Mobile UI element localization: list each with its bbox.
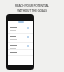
button[interactable] xyxy=(8,34,33,43)
button[interactable] xyxy=(8,50,33,56)
button[interactable] xyxy=(8,25,33,34)
staticText: REACH YOUR POTENTIAL xyxy=(15,4,49,8)
button[interactable] xyxy=(8,43,33,50)
staticText: WITHOUT THE GOALS xyxy=(17,9,47,13)
